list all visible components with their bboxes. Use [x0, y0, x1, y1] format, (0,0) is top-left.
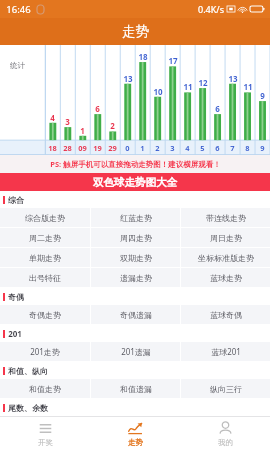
staticText: 10: [153, 86, 163, 97]
button[interactable]: 和值走势: [0, 379, 90, 398]
button[interactable]: 综合版走势: [0, 208, 90, 227]
staticText: 走势: [128, 438, 143, 447]
staticText: 奇偶遗漏: [120, 310, 152, 320]
staticText: 18: [48, 143, 57, 153]
button[interactable]: 201遗漏: [91, 342, 180, 361]
button[interactable]: 走势: [90, 417, 180, 450]
staticText: 蓝球201: [211, 346, 241, 357]
staticText: 统计: [10, 61, 25, 70]
staticText: 综合: [8, 195, 24, 205]
staticText: 坐标标准版走势: [198, 253, 254, 263]
staticText: 201遗漏: [121, 346, 151, 357]
staticText: PS: 触屏手机可以直接拖动走势图！建议横屏观看！: [50, 159, 221, 169]
staticText: 19: [93, 143, 102, 153]
staticText: 2: [110, 120, 115, 131]
button[interactable]: 红蓝走势: [91, 208, 180, 227]
button[interactable]: 周四走势: [91, 228, 180, 247]
button[interactable]: 201走势: [0, 342, 90, 361]
button[interactable]: 我的: [180, 417, 270, 450]
staticText: 6: [215, 103, 220, 114]
staticText: 周二走势: [29, 233, 61, 243]
staticText: 11: [183, 81, 193, 92]
staticText: 和值、纵向: [8, 366, 48, 376]
staticText: 周四走势: [120, 233, 152, 243]
staticText: 7: [230, 143, 235, 153]
staticText: 4: [50, 112, 55, 123]
staticText: 13: [228, 73, 238, 84]
staticText: 09: [78, 143, 87, 153]
staticText: 29: [108, 143, 117, 153]
staticText: 走势: [122, 23, 149, 40]
staticText: 纵向三行: [210, 384, 242, 394]
button[interactable]: 奇偶遗漏: [91, 305, 180, 324]
button[interactable]: 双期走势: [91, 248, 180, 267]
button[interactable]: 周二走势: [0, 228, 90, 247]
button[interactable]: 蓝球走势: [181, 268, 270, 287]
staticText: 1: [80, 125, 85, 136]
button[interactable]: 周日走势: [181, 228, 270, 247]
staticText: 遗漏走势: [120, 273, 152, 283]
button[interactable]: 蓝球201: [181, 342, 270, 361]
button[interactable]: 和值遗漏: [91, 379, 180, 398]
staticText: 0: [125, 143, 130, 153]
staticText: 12: [198, 77, 208, 88]
staticText: 单期走势: [29, 253, 61, 263]
staticText: 和值走势: [29, 384, 61, 394]
staticText: 5: [200, 143, 205, 153]
staticText: 蓝球奇偶: [210, 310, 242, 320]
button[interactable]: 带连线走势: [181, 208, 270, 227]
button[interactable]: 单期走势: [0, 248, 90, 267]
staticText: 28: [63, 143, 72, 153]
staticText: 和值遗漏: [120, 384, 152, 394]
staticText: 尾数、余数: [8, 403, 48, 413]
staticText: 双色球走势图大全: [93, 176, 177, 189]
staticText: 蓝球走势: [210, 273, 242, 283]
staticText: 8: [245, 143, 250, 153]
staticText: 11: [243, 81, 253, 92]
staticText: 16:46: [6, 3, 31, 16]
button[interactable]: 开奖: [0, 417, 90, 450]
staticText: 奇偶走势: [29, 310, 61, 320]
staticText: 4: [185, 143, 190, 153]
staticText: 带连线走势: [206, 213, 246, 223]
staticText: 出号特征: [29, 273, 61, 283]
staticText: 综合版走势: [25, 213, 65, 223]
staticText: 开奖: [38, 438, 53, 447]
staticText: 奇偶: [8, 292, 24, 302]
staticText: 红蓝走势: [120, 213, 152, 223]
button[interactable]: 坐标标准版走势: [181, 248, 270, 267]
staticText: 我的: [218, 438, 233, 447]
staticText: 3: [65, 116, 70, 127]
staticText: 双期走势: [120, 253, 152, 263]
button[interactable]: 遗漏走势: [91, 268, 180, 287]
staticText: 6: [95, 103, 100, 114]
button[interactable]: 蓝球奇偶: [181, 305, 270, 324]
staticText: 9: [260, 143, 265, 153]
staticText: 201走势: [30, 346, 60, 357]
staticText: 13: [123, 73, 133, 84]
staticText: 0.4K/s: [198, 3, 224, 15]
staticText: 201: [8, 328, 22, 339]
staticText: 9: [260, 90, 265, 101]
button[interactable]: 纵向三行: [181, 379, 270, 398]
staticText: 6: [215, 143, 220, 153]
staticText: 2: [155, 143, 160, 153]
staticText: 17: [168, 55, 178, 66]
staticText: 3: [170, 143, 175, 153]
button[interactable]: 出号特征: [0, 268, 90, 287]
staticText: 1: [140, 143, 145, 153]
button[interactable]: 奇偶走势: [0, 305, 90, 324]
staticText: 周日走势: [210, 233, 242, 243]
staticText: 18: [138, 51, 148, 62]
